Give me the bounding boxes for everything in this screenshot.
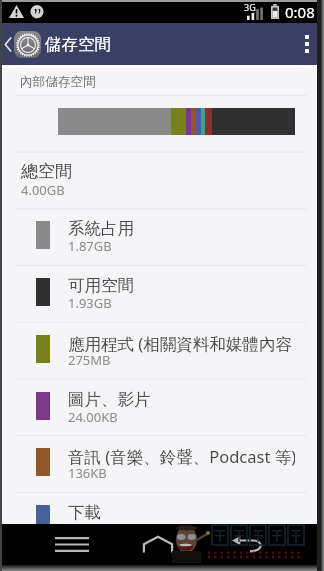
staticText: 內部儲存空間 bbox=[20, 74, 96, 90]
button[interactable]: 應用程式 (相關資料和媒體內容 bbox=[0, 322, 324, 378]
staticText: 4.00GB bbox=[21, 181, 65, 199]
staticText: 系統占用 bbox=[68, 218, 134, 239]
staticText: 0:08 bbox=[285, 2, 315, 22]
button[interactable]: More options bbox=[290, 23, 324, 65]
button[interactable]: 下載 bbox=[0, 492, 324, 524]
staticText: 圖片、影片 bbox=[68, 389, 151, 410]
button[interactable]: Home bbox=[138, 531, 178, 558]
button[interactable]: 音訊 (音樂、鈴聲、Podcast 等) bbox=[0, 435, 324, 491]
button[interactable]: 總空間 bbox=[0, 152, 324, 208]
staticText: 275MB bbox=[68, 351, 111, 369]
button[interactable]: 圖片、影片 bbox=[0, 379, 324, 435]
button[interactable]: Recent apps bbox=[52, 532, 91, 557]
staticText: 1.87GB bbox=[68, 237, 112, 255]
staticText: 儲存空間 bbox=[45, 34, 111, 55]
staticText: 1.93GB bbox=[68, 294, 112, 312]
staticText: 3G bbox=[244, 1, 256, 13]
button[interactable]: Back bbox=[0, 23, 41, 65]
staticText: 24.00KB bbox=[68, 408, 118, 426]
staticText: 音訊 (音樂、鈴聲、Podcast 等) bbox=[68, 445, 295, 468]
staticText: 應用程式 (相關資料和媒體內容 bbox=[68, 332, 292, 355]
staticText: 總空間 bbox=[21, 161, 72, 182]
button[interactable]: 系統占用 bbox=[0, 208, 324, 264]
button[interactable]: 可用空間 bbox=[0, 265, 324, 321]
staticText: 可用空間 bbox=[68, 275, 134, 296]
other: Back bbox=[5, 38, 11, 51]
staticText: 下載 bbox=[68, 502, 101, 523]
button[interactable]: Back bbox=[228, 533, 268, 557]
staticText: 136KB bbox=[68, 464, 107, 482]
